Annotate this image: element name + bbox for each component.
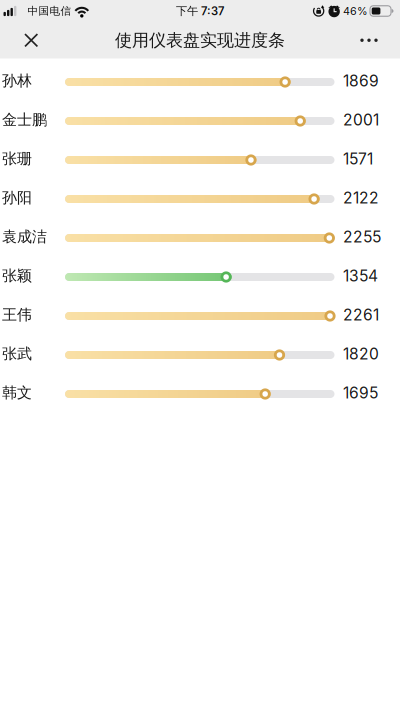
staticText: 2261 [343, 305, 379, 324]
staticText: 46% [343, 4, 368, 18]
staticText: 孙林 [2, 71, 32, 90]
staticText: 1571 [343, 149, 373, 168]
staticText: 张珊 [2, 149, 32, 168]
staticText: 袁成洁 [2, 227, 47, 246]
staticText: 张武 [2, 344, 32, 363]
staticText: 王伟 [2, 305, 32, 324]
staticText: 韩文 [2, 383, 32, 402]
staticText: 使用仪表盘实现进度条 [115, 29, 285, 51]
button[interactable] [350, 25, 400, 56]
staticText: 1869 [343, 71, 379, 90]
staticText: 金士鹏 [2, 110, 47, 129]
staticText: 1695 [343, 383, 378, 402]
staticText: 1820 [343, 344, 379, 363]
staticText: 中国电信 [28, 4, 72, 18]
staticText: 2255 [343, 227, 381, 246]
button[interactable] [0, 25, 47, 55]
staticText: 下午 7:37 [176, 4, 224, 18]
staticText: 1354 [343, 266, 378, 285]
staticText: 孙阳 [2, 188, 32, 207]
staticText: 张颖 [2, 266, 32, 285]
staticText: 2122 [343, 188, 379, 207]
staticText: 2001 [343, 110, 379, 129]
